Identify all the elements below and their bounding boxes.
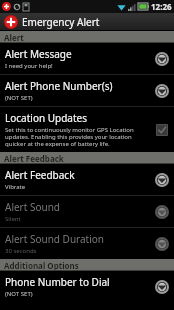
staticText: Set this to continuously monitor GPS Loc… — [5, 126, 151, 148]
staticText: Alert Sound Duration — [5, 232, 105, 246]
staticText: Alert — [4, 32, 24, 43]
button[interactable]: Open options — [154, 279, 170, 295]
staticText: Alert Message — [5, 47, 72, 61]
button[interactable]: Open options — [154, 83, 170, 99]
staticText: Alert Phone Number(s) — [5, 79, 113, 93]
button[interactable]: Open options — [154, 172, 170, 188]
staticText: Silent — [5, 215, 21, 223]
button[interactable]: Alert Feedback — [0, 164, 174, 195]
button[interactable]: Open options — [154, 236, 170, 252]
staticText: 30 seconds — [5, 247, 37, 255]
button[interactable]: Phone Number to Dial — [0, 271, 174, 302]
staticText: Emergency Alert — [22, 15, 100, 29]
button[interactable]: Location updates checkbox — [154, 122, 170, 138]
button[interactable]: Alert Message — [0, 43, 174, 74]
staticText: Vibrate — [5, 183, 26, 191]
staticText: Phone Number to Dial — [5, 275, 110, 289]
button[interactable]: Open options — [154, 51, 170, 67]
staticText: Alert Feedback — [5, 168, 75, 182]
button[interactable]: Alert Sound — [0, 196, 174, 227]
staticText: (NOT SET) — [5, 94, 33, 102]
staticText: Alert Feedback — [4, 153, 64, 164]
staticText: Location Updates — [5, 111, 87, 125]
staticText: (NOT SET) — [5, 290, 33, 298]
button[interactable]: Open options — [154, 204, 170, 220]
staticText: I need your help! — [5, 62, 53, 70]
button[interactable]: Alert Sound Duration — [0, 228, 174, 259]
button[interactable]: Location Updates — [0, 107, 174, 152]
staticText: Alert Sound — [5, 200, 60, 214]
staticText: Additional Options — [4, 260, 79, 271]
button[interactable]: Alert Phone Number(s) — [0, 75, 174, 106]
staticText: 12:26 — [151, 1, 172, 12]
